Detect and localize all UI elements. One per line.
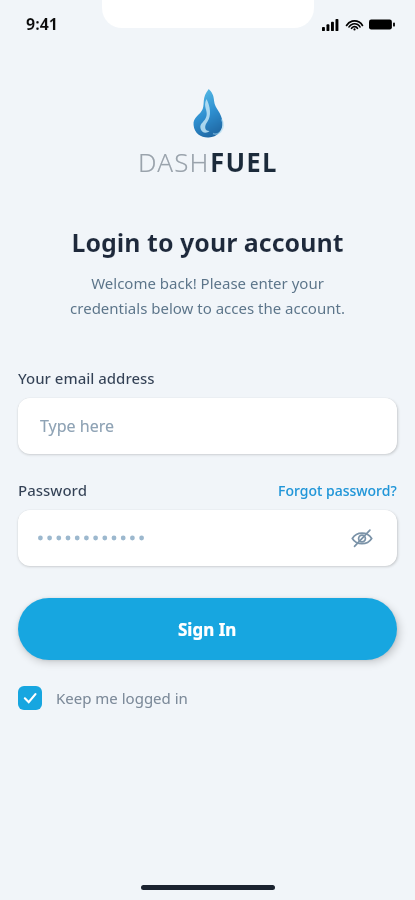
staticText: Your email address bbox=[18, 368, 155, 388]
staticText: Sign In bbox=[178, 618, 237, 641]
staticText: DASH bbox=[138, 144, 210, 179]
button[interactable]: Forgot password? bbox=[278, 481, 397, 500]
staticText: FUEL bbox=[210, 144, 278, 179]
button[interactable]: Type here bbox=[18, 398, 397, 454]
button[interactable]: Keep me logged in bbox=[18, 686, 188, 710]
staticText: Keep me logged in bbox=[56, 688, 188, 708]
staticText: Login to your account bbox=[71, 225, 344, 259]
button[interactable]: Show password bbox=[18, 510, 397, 566]
button[interactable]: Sign In bbox=[18, 598, 397, 660]
staticText: Type here bbox=[40, 415, 114, 437]
staticText: Welcome back! Please enter your credenti… bbox=[24, 273, 391, 318]
button[interactable]: Show password bbox=[345, 521, 379, 555]
staticText: Forgot password? bbox=[278, 481, 397, 500]
staticText: 9:41 bbox=[26, 13, 58, 35]
staticText: Password bbox=[18, 480, 87, 500]
